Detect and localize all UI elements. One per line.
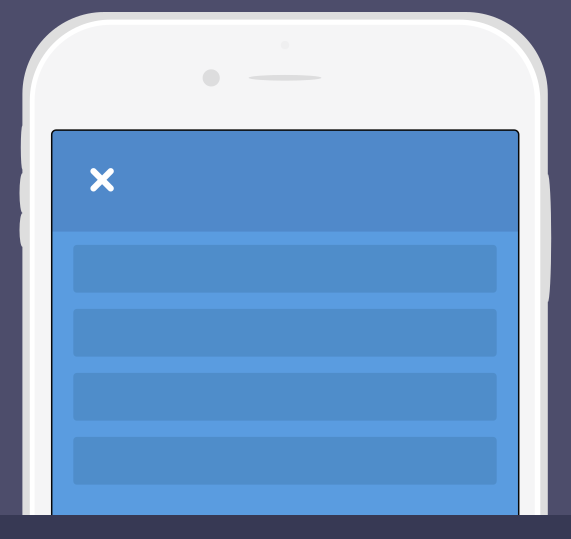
button[interactable]: Close [76,154,128,206]
